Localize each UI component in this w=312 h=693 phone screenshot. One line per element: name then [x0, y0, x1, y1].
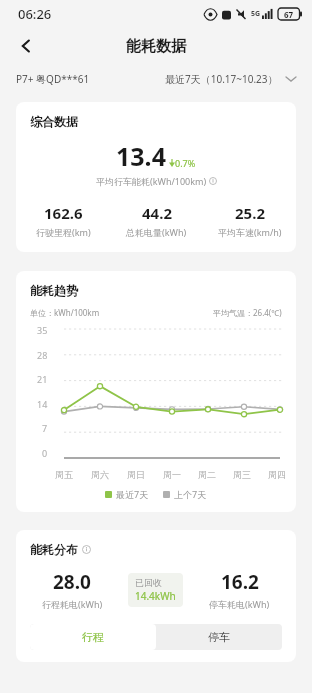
- staticText: 周五: [55, 469, 73, 480]
- staticText: 行程: [82, 630, 104, 644]
- staticText: 能耗数据: [126, 37, 186, 56]
- staticText: 周一: [163, 469, 181, 480]
- staticText: 能耗分布: [30, 542, 78, 557]
- staticText: 行程耗电(kWh): [42, 598, 103, 610]
- button[interactable]: 行程: [30, 624, 156, 650]
- staticText: 14.4kWh: [135, 589, 176, 603]
- staticText: 周日: [127, 469, 145, 480]
- staticText: 5G: [251, 9, 261, 19]
- staticText: 能耗趋势: [30, 283, 78, 298]
- staticText: 162.6: [44, 203, 83, 223]
- staticText: 行驶里程(km): [36, 226, 91, 238]
- staticText: 上个7天: [174, 488, 207, 500]
- staticText: 平均气温：26.4(℃): [213, 307, 282, 318]
- staticText: 28.0: [53, 569, 91, 595]
- staticText: 平均车速(km/h): [218, 226, 282, 238]
- staticText: 总耗电量(kWh): [126, 226, 187, 238]
- staticText: 44.2: [142, 203, 172, 223]
- staticText: 0: [42, 447, 48, 458]
- staticText: 7: [42, 422, 48, 433]
- button[interactable]: 停车: [156, 624, 282, 650]
- staticText: 28: [37, 349, 48, 360]
- button[interactable]: Back: [8, 28, 44, 64]
- staticText: 周三: [233, 469, 251, 480]
- staticText: 25.2: [235, 203, 265, 223]
- staticText: 35: [37, 324, 48, 335]
- staticText: 最近7天: [116, 488, 149, 500]
- staticText: 平均行车能耗(kWh/100km): [96, 175, 207, 187]
- staticText: 67: [284, 9, 294, 20]
- staticText: 21: [37, 373, 48, 384]
- staticText: 周二: [198, 469, 216, 480]
- staticText: 0.7%: [175, 157, 196, 169]
- staticText: 16.2: [221, 569, 259, 595]
- staticText: 13.4: [116, 139, 166, 173]
- button[interactable]: 最近7天（10.17~10.23）: [165, 72, 296, 86]
- staticText: 单位：kWh/100km: [30, 307, 100, 318]
- staticText: 最近7天（10.17~10.23）: [165, 72, 278, 86]
- button[interactable]: P7+ 粤QD***61: [16, 72, 90, 86]
- staticText: P7+ 粤QD***61: [16, 72, 90, 86]
- staticText: 06:26: [18, 5, 52, 23]
- staticText: 综合数据: [30, 114, 78, 129]
- staticText: 停车: [208, 630, 230, 644]
- staticText: 14: [37, 398, 48, 409]
- staticText: 周六: [91, 469, 109, 480]
- staticText: 周四: [268, 469, 286, 480]
- staticText: 停车耗电(kWh): [209, 598, 270, 610]
- staticText: 已回收: [135, 577, 162, 588]
